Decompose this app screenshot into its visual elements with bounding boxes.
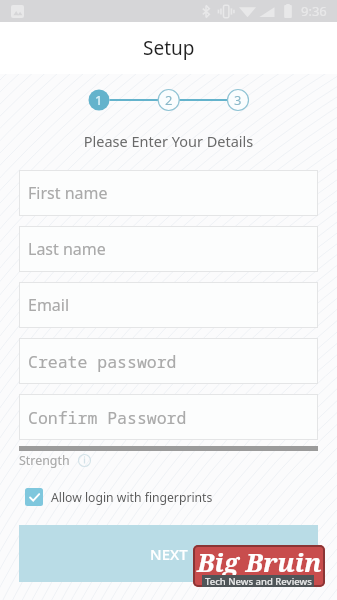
staticText: 9:36 — [301, 2, 327, 20]
button[interactable]: Email — [19, 282, 318, 328]
staticText: Create password — [28, 350, 177, 372]
staticText: 3 — [234, 91, 242, 109]
staticText: Confirm Password — [28, 406, 187, 428]
button[interactable]: Password strength info — [78, 454, 91, 467]
button[interactable]: Allow login with fingerprints — [19, 488, 213, 506]
button[interactable]: Confirm Password — [19, 394, 318, 440]
staticText: Please Enter Your Details — [0, 131, 337, 151]
staticText: NEXT — [150, 544, 188, 564]
staticText: Strength — [19, 452, 70, 469]
staticText: Big Bruin — [197, 545, 322, 579]
button[interactable]: Create password — [19, 338, 318, 384]
staticText: Email — [28, 294, 70, 316]
button[interactable]: Step 3 — [227, 89, 249, 111]
staticText: Setup — [143, 35, 195, 61]
staticText: 2 — [165, 91, 173, 109]
staticText: First name — [28, 182, 108, 204]
button[interactable]: Step 2 — [158, 89, 180, 111]
staticText: Tech News and Reviews — [205, 575, 312, 587]
staticText: 1 — [95, 91, 103, 109]
button[interactable]: Step 1 — [88, 89, 110, 111]
button[interactable]: Last name — [19, 226, 318, 272]
staticText: Allow login with fingerprints — [51, 489, 213, 506]
button[interactable]: NEXT — [19, 525, 318, 582]
button[interactable]: First name — [19, 170, 318, 216]
staticText: Last name — [28, 238, 106, 260]
